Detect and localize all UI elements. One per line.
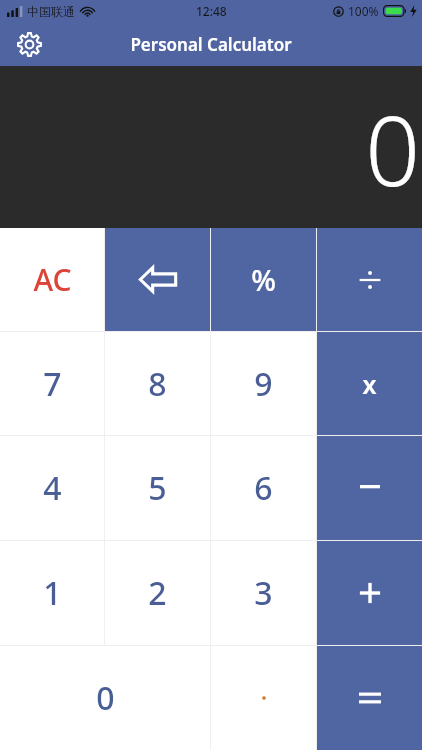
staticText: 8 — [148, 362, 167, 406]
staticText: 100% — [348, 3, 379, 19]
button[interactable]: 8 — [105, 332, 210, 435]
button[interactable]: 4 — [0, 436, 104, 540]
staticText: 0 — [365, 83, 420, 214]
staticText: 3 — [254, 571, 273, 615]
button[interactable]: 1 — [0, 541, 104, 645]
button[interactable]: 0 — [0, 646, 210, 750]
staticText: 7 — [43, 362, 62, 406]
staticText: 4 — [43, 466, 62, 510]
button[interactable]: Decimal point — [211, 646, 316, 750]
button[interactable]: 7 — [0, 332, 104, 435]
button[interactable]: Equals — [317, 646, 422, 750]
staticText: 5 — [148, 466, 167, 510]
staticText: 中国联通 — [27, 4, 75, 19]
button[interactable]: x — [317, 332, 422, 435]
button[interactable]: Divide — [317, 228, 422, 331]
staticText: Personal Calculator — [130, 33, 292, 56]
button[interactable]: 9 — [211, 332, 316, 435]
staticText: 12:48 — [196, 3, 227, 19]
button[interactable]: AC — [0, 228, 104, 331]
button[interactable]: Minus — [317, 436, 422, 540]
button[interactable]: 3 — [211, 541, 316, 645]
staticText: 9 — [254, 362, 273, 406]
button[interactable]: 6 — [211, 436, 316, 540]
button[interactable]: Backspace — [105, 228, 210, 331]
staticText: AC — [33, 259, 72, 300]
button[interactable]: 5 — [105, 436, 210, 540]
staticText: x — [362, 367, 377, 401]
staticText: 0 — [96, 676, 115, 720]
staticText: 6 — [254, 466, 273, 510]
button[interactable]: % — [211, 228, 316, 331]
button[interactable]: Settings — [12, 27, 46, 61]
button[interactable]: 2 — [105, 541, 210, 645]
staticText: 1 — [43, 571, 62, 615]
staticText: 2 — [148, 571, 167, 615]
staticText: % — [251, 260, 276, 299]
button[interactable]: Plus — [317, 541, 422, 645]
